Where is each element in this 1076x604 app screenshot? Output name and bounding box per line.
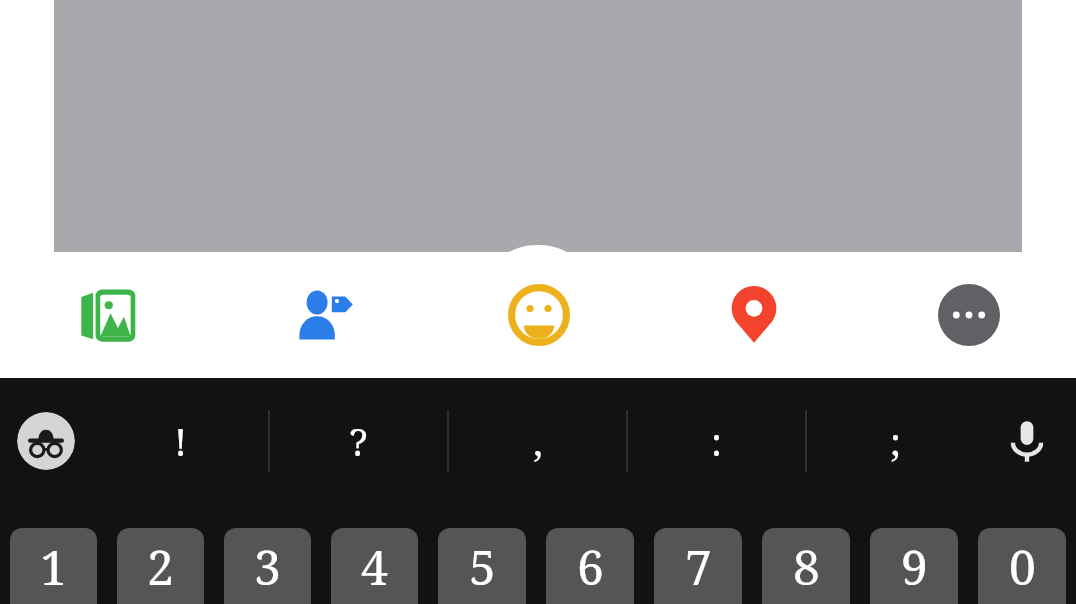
button[interactable]: 5	[438, 528, 526, 604]
staticText: !	[174, 415, 187, 467]
staticText: 4	[361, 534, 388, 599]
button[interactable]: ?	[270, 378, 447, 503]
button[interactable]: 0	[978, 528, 1066, 604]
button[interactable]: Contact	[216, 252, 431, 378]
staticText: 1	[40, 534, 67, 599]
button[interactable]: 1	[10, 528, 97, 604]
staticText: ?	[349, 415, 368, 467]
staticText: ,	[533, 415, 543, 467]
button[interactable]: 3	[224, 528, 311, 604]
staticText: 8	[793, 534, 820, 599]
button[interactable]: 4	[331, 528, 418, 604]
staticText: :	[711, 415, 722, 467]
button[interactable]: !	[92, 378, 268, 503]
staticText: 2	[147, 534, 174, 599]
button[interactable]: 7	[654, 528, 742, 604]
staticText: 5	[469, 534, 496, 599]
button[interactable]: ;	[807, 378, 984, 503]
button[interactable]: Voice input	[999, 413, 1055, 469]
button[interactable]: Location	[646, 252, 861, 378]
staticText: 0	[1009, 534, 1036, 599]
staticText: 6	[577, 534, 604, 599]
button[interactable]: Photos	[0, 252, 216, 378]
staticText: 9	[901, 534, 928, 599]
button[interactable]: :	[628, 378, 805, 503]
staticText: 3	[254, 534, 281, 599]
staticText: ;	[890, 415, 901, 467]
button[interactable]: Emoji	[431, 252, 646, 378]
button[interactable]: 2	[117, 528, 204, 604]
button[interactable]: 8	[762, 528, 850, 604]
staticText: 7	[685, 534, 712, 599]
button[interactable]: 6	[546, 528, 634, 604]
button[interactable]: More options	[861, 252, 1076, 378]
button[interactable]: ,	[449, 378, 626, 503]
button[interactable]: 9	[870, 528, 958, 604]
button[interactable]: Incognito mode	[17, 412, 75, 470]
